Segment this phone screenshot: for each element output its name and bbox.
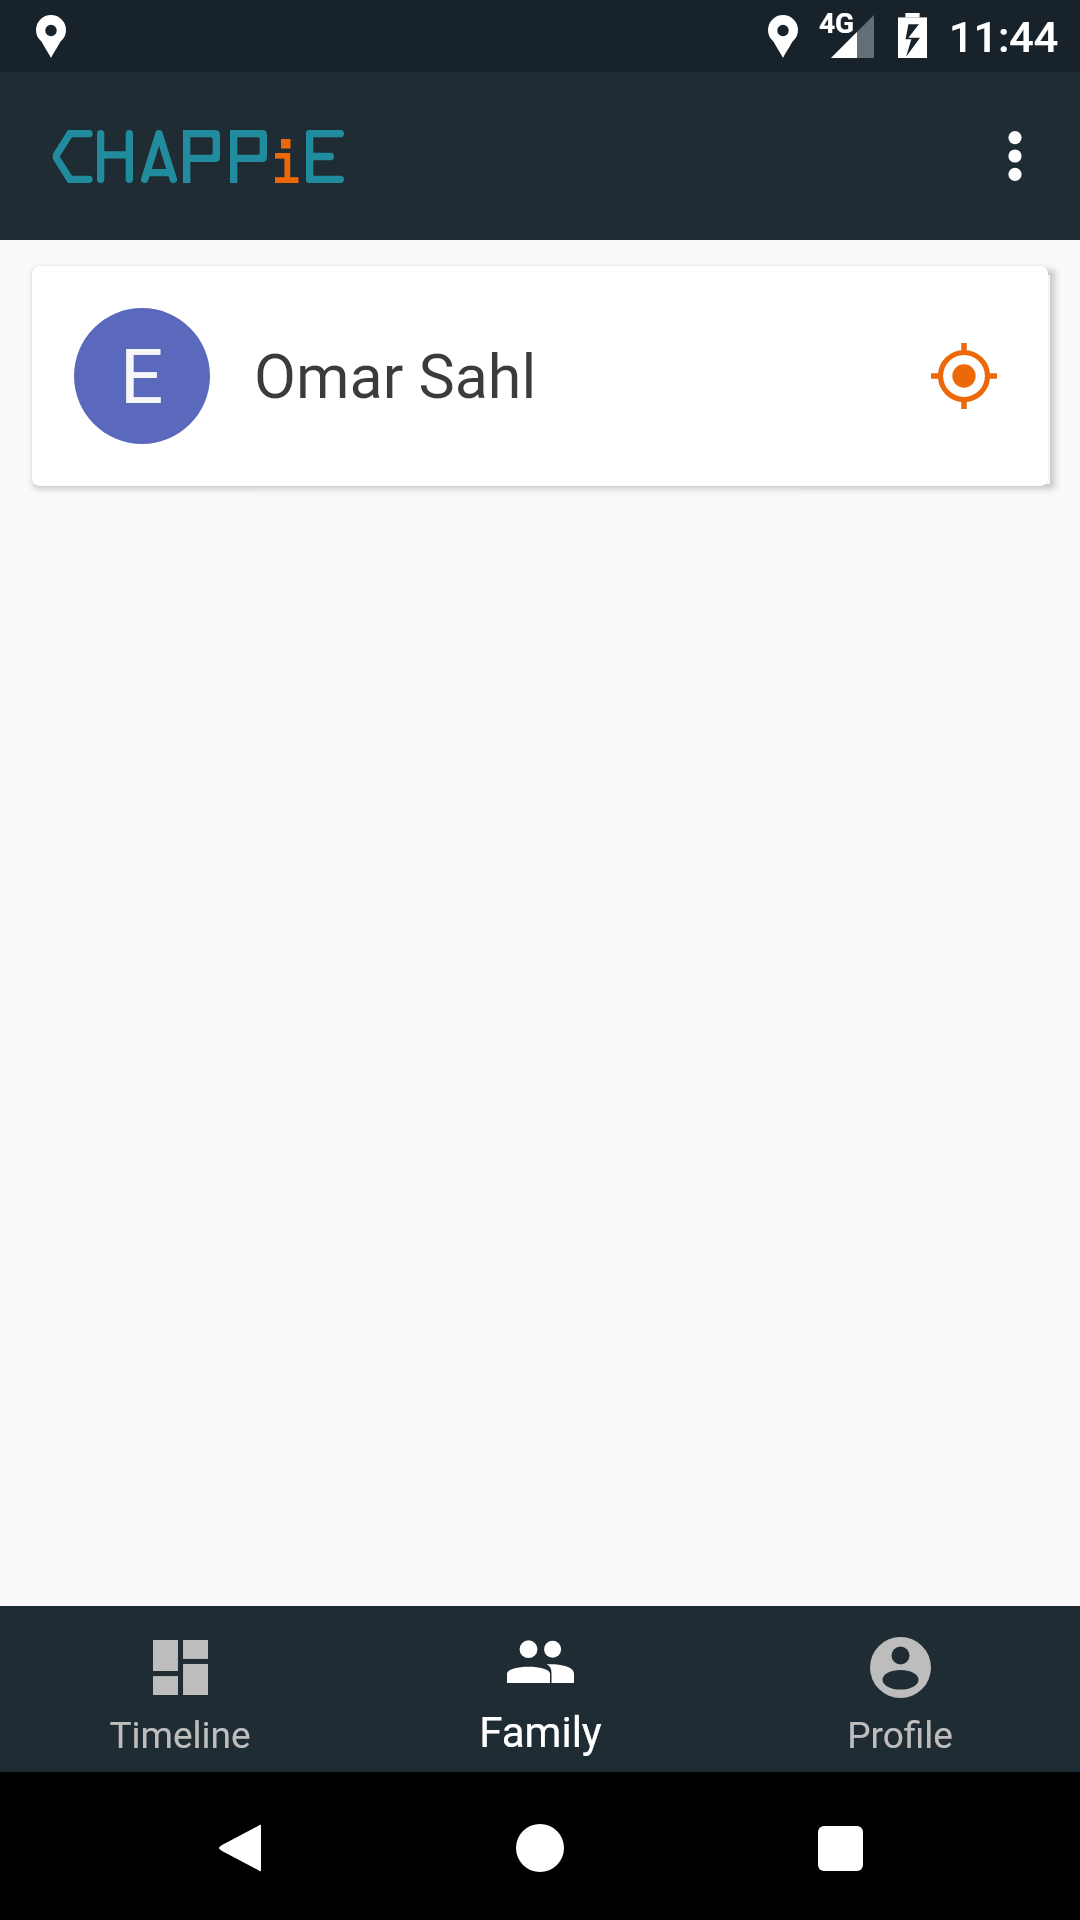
staticText: Profile [847, 1714, 953, 1757]
button[interactable]: More options [973, 114, 1057, 198]
staticText: E [120, 332, 164, 421]
staticText: Omar Sahl [254, 341, 537, 412]
button[interactable]: Family [360, 1606, 720, 1772]
staticText: 4G [819, 7, 855, 40]
button[interactable]: Locate on map [922, 334, 1006, 418]
staticText: Family [479, 1708, 602, 1757]
staticText: Timeline [109, 1714, 251, 1757]
button[interactable]: Profile [720, 1606, 1080, 1772]
button[interactable]: Home [496, 1804, 584, 1892]
button[interactable]: Recent apps [796, 1804, 884, 1892]
button[interactable]: Back [196, 1804, 284, 1892]
staticText: 11:44 [949, 12, 1059, 62]
button[interactable]: Timeline [0, 1606, 360, 1772]
button[interactable]: E [32, 266, 1048, 486]
